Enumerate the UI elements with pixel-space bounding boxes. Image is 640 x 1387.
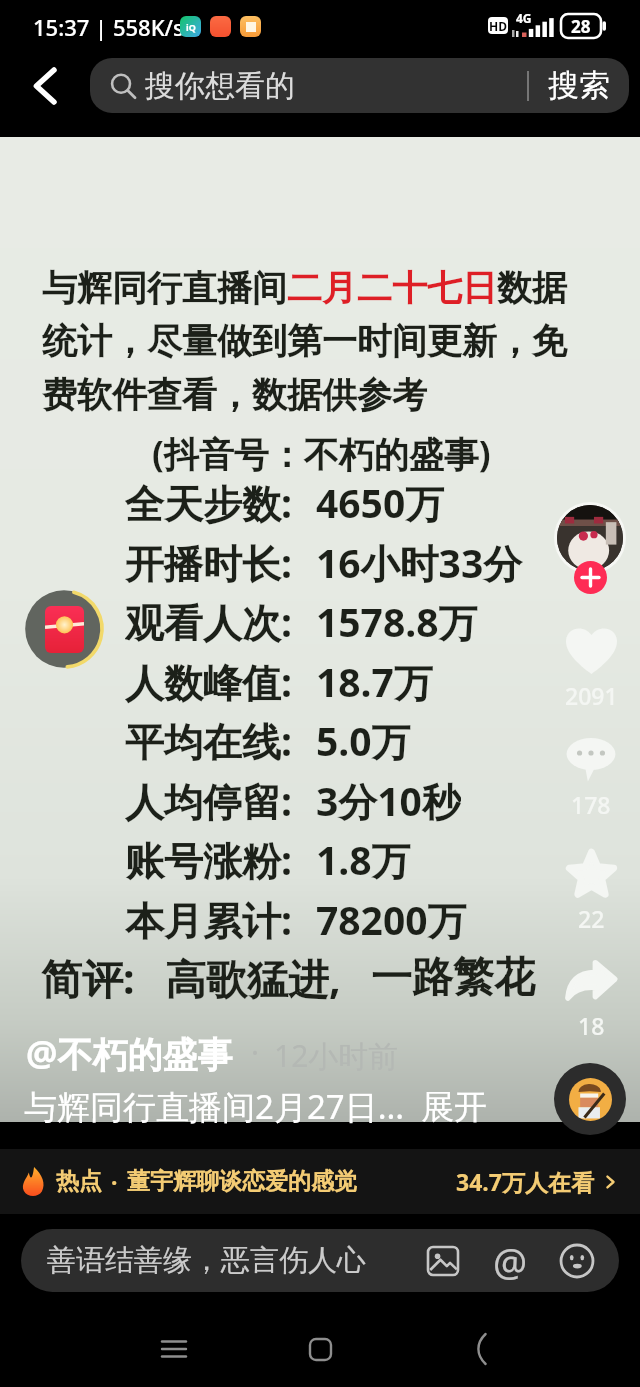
staticText: 本月累计: — [125, 893, 292, 943]
button[interactable]: Follow — [574, 561, 607, 594]
staticText: 22 — [578, 903, 605, 934]
staticText: 人数峰值: — [125, 655, 292, 705]
button[interactable]: Favorite — [551, 845, 631, 936]
staticText: 18 — [578, 1010, 605, 1041]
staticText: 平均在线: — [125, 714, 292, 764]
staticText: 4650万 — [316, 476, 445, 526]
button[interactable]: Profile — [557, 505, 623, 571]
button[interactable]: Comment — [551, 730, 631, 822]
button[interactable]: Red packet — [24, 589, 104, 669]
button[interactable]: @不朽的盛事 — [26, 1030, 233, 1078]
staticText: 15:37 | 558K/s — [33, 12, 184, 42]
button[interactable]: 热点 — [0, 1149, 640, 1214]
staticText: 与辉同行直播间二月二十七日数据统计，尽量做到第一时间更新，免费软件查看，数据供参… — [42, 266, 570, 418]
staticText: 搜索 — [548, 66, 610, 105]
button[interactable]: Back — [14, 58, 78, 113]
staticText: 18.7万 — [316, 655, 433, 705]
staticText: iQ — [186, 21, 196, 33]
staticText: 78200万 — [316, 893, 467, 943]
staticText: 12小时前 — [274, 1035, 399, 1076]
button[interactable]: Recents — [146, 1321, 202, 1377]
staticText: 观看人次: — [125, 595, 292, 645]
button[interactable]: 搜索 — [529, 58, 629, 113]
staticText: HD — [489, 18, 507, 34]
staticText: 与辉同行直播间2月27日... — [24, 1084, 405, 1129]
staticText: 3分10秒 — [316, 774, 461, 824]
staticText: · — [251, 1032, 260, 1073]
staticText: 热点 — [56, 1167, 102, 1196]
staticText: 178 — [571, 789, 611, 820]
staticText: 高歌猛进, — [165, 950, 341, 1006]
button[interactable]: Emoji — [551, 1235, 603, 1287]
staticText: 16小时33分 — [316, 536, 523, 586]
button[interactable]: Home — [292, 1321, 348, 1377]
staticText: 1578.8万 — [316, 595, 478, 645]
staticText: 简评: — [41, 950, 135, 1006]
staticText: @ — [493, 1235, 528, 1287]
button[interactable]: 展开 — [421, 1086, 487, 1128]
button[interactable]: Share — [551, 954, 631, 1043]
button[interactable]: Music — [554, 1063, 626, 1135]
staticText: 董宇辉聊谈恋爱的感觉 — [127, 1167, 357, 1196]
button[interactable]: Like — [551, 620, 631, 713]
staticText: 5.0万 — [316, 714, 411, 764]
button[interactable]: Back — [452, 1321, 508, 1377]
staticText: 一路繁花 — [371, 952, 535, 1004]
staticText: 善语结善缘，恶言伤人心 — [47, 1242, 366, 1279]
staticText: 全天步数: — [125, 476, 292, 526]
staticText: 搜你想看的 — [145, 67, 295, 105]
staticText: 2091 — [565, 680, 618, 711]
button[interactable]: Image — [417, 1235, 469, 1287]
button[interactable]: 善语结善缘，恶言伤人心 — [21, 1229, 619, 1292]
staticText: 开播时长: — [125, 536, 292, 586]
staticText: 28 — [571, 15, 591, 38]
staticText: 人均停留: — [125, 774, 292, 824]
button[interactable]: Mention — [484, 1235, 536, 1287]
staticText: 1.8万 — [316, 833, 411, 883]
staticText: 4G — [516, 10, 532, 26]
button[interactable]: 搜你想看的 — [90, 58, 629, 113]
staticText: (抖音号：不朽的盛事) — [152, 430, 491, 478]
staticText: 账号涨粉: — [125, 833, 292, 883]
staticText: · — [111, 1166, 118, 1197]
staticText: 34.7万人在看 — [456, 1166, 594, 1197]
